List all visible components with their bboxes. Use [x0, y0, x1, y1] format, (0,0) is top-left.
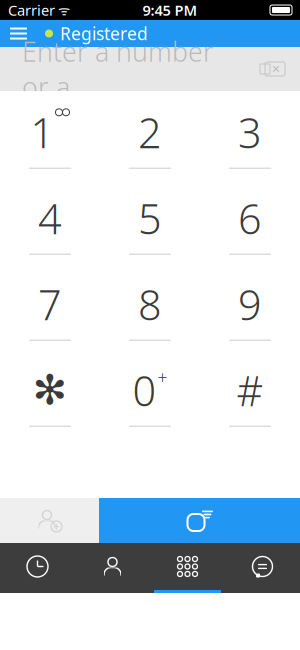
- button[interactable]: 2: [100, 97, 200, 183]
- staticText: ✻: [32, 367, 67, 414]
- button[interactable]: Keypad: [150, 543, 225, 593]
- button[interactable]: 5: [100, 183, 200, 269]
- staticText: Registered: [60, 22, 148, 45]
- staticText: #: [236, 363, 263, 418]
- staticText: +: [53, 518, 60, 534]
- staticText: 4: [38, 191, 62, 246]
- button[interactable]: 0: [100, 355, 200, 441]
- staticText: 9:45 PM: [142, 0, 197, 20]
- button[interactable]: Add contact: [0, 498, 99, 543]
- button[interactable]: #: [200, 355, 300, 441]
- staticText: 8: [138, 277, 162, 332]
- staticText: 5: [138, 191, 162, 246]
- button[interactable]: Contacts: [75, 543, 150, 593]
- staticText: ✕: [271, 63, 280, 75]
- button[interactable]: Call: [99, 498, 300, 543]
- staticText: Carrier: [8, 0, 55, 20]
- staticText: ᯤ: [55, 1, 70, 19]
- staticText: 3: [238, 105, 262, 160]
- button[interactable]: Recents: [0, 543, 75, 593]
- staticText: 6: [238, 191, 262, 246]
- button[interactable]: 9: [200, 269, 300, 355]
- button[interactable]: ✻: [0, 355, 100, 441]
- staticText: +: [157, 366, 167, 389]
- button[interactable]: 7: [0, 269, 100, 355]
- button[interactable]: 3: [200, 97, 300, 183]
- button[interactable]: Menu: [0, 19, 37, 47]
- button[interactable]: 8: [100, 269, 200, 355]
- staticText: 2: [138, 105, 162, 160]
- staticText: 7: [38, 277, 62, 332]
- button[interactable]: 1: [0, 97, 100, 183]
- staticText: 1: [30, 105, 54, 160]
- staticText: 0: [132, 363, 156, 418]
- staticText: 9: [238, 277, 262, 332]
- button[interactable]: 6: [200, 183, 300, 269]
- button[interactable]: Messages: [225, 543, 300, 593]
- staticText: Enter a number or a…: [22, 34, 214, 104]
- button[interactable]: Backspace: [248, 53, 296, 85]
- button[interactable]: 4: [0, 183, 100, 269]
